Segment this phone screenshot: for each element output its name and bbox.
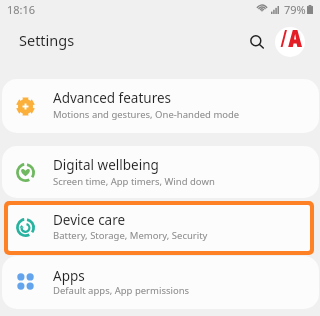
- staticText: 18:16: [7, 2, 36, 17]
- button[interactable]: [2, 79, 319, 133]
- button[interactable]: Account: [275, 27, 305, 57]
- staticText: 79%: [284, 2, 306, 17]
- button[interactable]: [2, 146, 319, 198]
- button[interactable]: [8, 205, 310, 251]
- staticText: Advanced features: [53, 89, 172, 107]
- button[interactable]: Search: [243, 28, 271, 56]
- staticText: Default apps, App permissions: [53, 284, 190, 297]
- staticText: Settings: [19, 30, 75, 50]
- staticText: Motions and gestures, One-handed mode: [53, 108, 240, 121]
- staticText: Battery, Storage, Memory, Security: [53, 229, 208, 242]
- staticText: Digital wellbeing: [53, 156, 159, 174]
- staticText: Device care: [53, 211, 126, 229]
- staticText: Screen time, App timers, Wind down: [53, 175, 215, 188]
- staticText: Apps: [53, 267, 85, 285]
- button[interactable]: [2, 256, 319, 309]
